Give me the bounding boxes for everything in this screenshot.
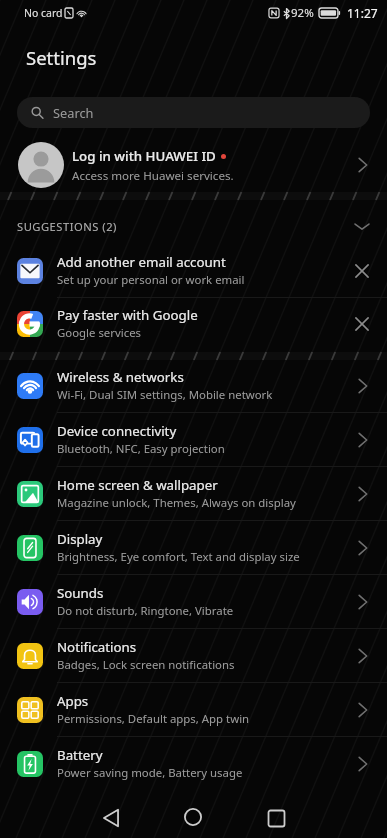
- staticText: Power saving mode, Battery usage: [57, 765, 243, 781]
- button[interactable]: Search: [17, 97, 370, 128]
- button[interactable]: Back: [86, 794, 135, 838]
- staticText: Log in with HUAWEI ID: [72, 147, 216, 165]
- button[interactable]: Wireless & networks: [0, 359, 387, 412]
- staticText: Search: [53, 104, 94, 121]
- staticText: Notifications: [57, 638, 137, 656]
- staticText: 92%: [291, 5, 314, 21]
- staticText: Magazine unlock, Themes, Always on displ…: [57, 495, 296, 511]
- staticText: 11:27: [347, 5, 378, 21]
- staticText: No card: [24, 6, 63, 20]
- staticText: SUGGESTIONS (2): [17, 219, 117, 234]
- button[interactable]: Pay faster with Google: [0, 297, 387, 350]
- staticText: Wi-Fi, Dual SIM settings, Mobile network: [57, 387, 273, 403]
- button[interactable]: Dismiss suggestion: [349, 258, 375, 284]
- staticText: Access more Huawei services.: [72, 168, 234, 184]
- button[interactable]: Sounds: [0, 575, 387, 628]
- staticText: Battery: [57, 746, 103, 764]
- staticText: Bluetooth, NFC, Easy projection: [57, 441, 225, 457]
- staticText: Apps: [57, 692, 89, 710]
- staticText: Device connectivity: [57, 422, 177, 440]
- button[interactable]: Add another email account: [0, 244, 387, 297]
- staticText: Permissions, Default apps, App twin: [57, 711, 250, 727]
- button[interactable]: SUGGESTIONS (2): [0, 208, 387, 244]
- button[interactable]: Device connectivity: [0, 413, 387, 466]
- staticText: Home screen & wallpaper: [57, 476, 218, 494]
- button[interactable]: Battery: [0, 737, 387, 790]
- button[interactable]: Display: [0, 521, 387, 574]
- staticText: Badges, Lock screen notifications: [57, 657, 235, 673]
- staticText: Set up your personal or work email: [57, 272, 245, 288]
- staticText: Do not disturb, Ringtone, Vibrate: [57, 603, 234, 619]
- staticText: Google services: [57, 325, 142, 341]
- button[interactable]: Home screen & wallpaper: [0, 467, 387, 520]
- staticText: Pay faster with Google: [57, 306, 198, 324]
- staticText: Wireless & networks: [57, 368, 184, 386]
- button[interactable]: Apps: [0, 683, 387, 736]
- staticText: Sounds: [57, 584, 104, 602]
- staticText: Settings: [26, 45, 97, 70]
- staticText: Add another email account: [57, 253, 226, 271]
- button[interactable]: Log in with HUAWEI ID: [0, 136, 387, 194]
- button[interactable]: Dismiss suggestion: [349, 311, 375, 337]
- button[interactable]: Home: [168, 793, 217, 838]
- staticText: Display: [57, 530, 103, 548]
- staticText: Brightness, Eye comfort, Text and displa…: [57, 549, 300, 565]
- button[interactable]: Recent apps: [252, 794, 301, 838]
- button[interactable]: Notifications: [0, 629, 387, 682]
